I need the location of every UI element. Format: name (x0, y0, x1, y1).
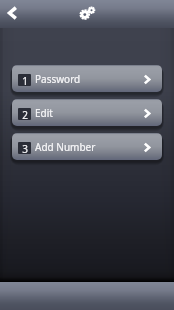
staticText: 2 (22, 108, 28, 120)
button[interactable]: Back (0, 0, 27, 28)
staticText: 3 (22, 142, 28, 154)
button[interactable]: 3 (12, 133, 162, 160)
button[interactable]: Settings (74, 0, 102, 28)
staticText: 1 (22, 74, 28, 86)
button[interactable]: 2 (12, 99, 162, 126)
staticText: Add Number (35, 140, 96, 154)
staticText: Password (35, 72, 81, 86)
staticText: Edit (35, 106, 53, 120)
button[interactable]: 1 (12, 65, 162, 92)
